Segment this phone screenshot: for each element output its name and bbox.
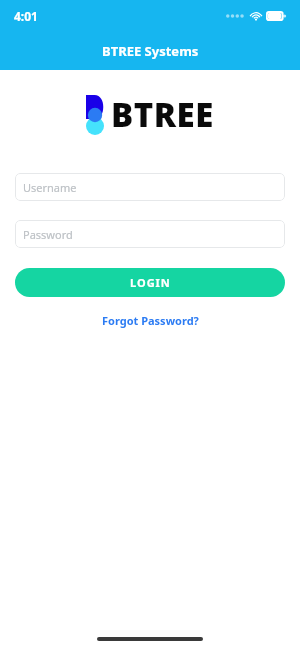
- staticText: LOGIN: [130, 275, 171, 290]
- staticText: Forgot Password?: [102, 313, 199, 328]
- staticText: BTREE Systems: [102, 42, 199, 60]
- staticText: BTREE: [111, 92, 214, 137]
- staticText: Username: [23, 180, 77, 195]
- staticText: Password: [23, 227, 73, 242]
- button[interactable]: Password: [15, 220, 285, 248]
- button[interactable]: Username: [15, 173, 285, 201]
- button[interactable]: LOGIN: [15, 268, 285, 297]
- button[interactable]: Forgot Password?: [98, 309, 203, 332]
- staticText: 4:01: [14, 8, 38, 24]
